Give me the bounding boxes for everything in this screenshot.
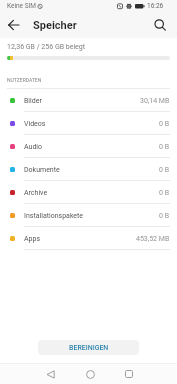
staticText: 0 B — [159, 120, 170, 128]
button[interactable]: BEREINIGEN — [38, 340, 139, 355]
staticText: Installationspakete — [24, 212, 84, 220]
staticText: Audio — [24, 143, 43, 151]
staticText: Keine SIM — [7, 2, 36, 10]
button[interactable]: Bilder — [0, 89, 177, 112]
button[interactable]: Apps — [0, 227, 177, 250]
staticText: Speicher — [33, 19, 77, 32]
staticText: Videos — [24, 120, 46, 128]
button[interactable] — [116, 364, 141, 384]
staticText: BEREINIGEN — [69, 344, 109, 352]
staticText: 0 B — [159, 143, 170, 151]
button[interactable]: Installationspakete — [0, 204, 177, 227]
button[interactable]: Videos — [0, 112, 177, 135]
staticText: Apps — [24, 235, 41, 243]
staticText: Dokumente — [24, 166, 60, 174]
staticText: 453,52 MB — [136, 235, 170, 243]
button[interactable]: Archive — [0, 181, 177, 204]
staticText: NUTZERDATEN — [7, 77, 42, 83]
button[interactable]: Audio — [0, 135, 177, 158]
staticText: 0 B — [159, 189, 170, 197]
staticText: 16:26 — [147, 2, 164, 10]
button[interactable] — [38, 364, 63, 384]
staticText: 12,36 GB / 256 GB belegt — [7, 43, 86, 51]
staticText: Archive — [24, 189, 48, 197]
staticText: 30,14 MB — [140, 97, 170, 105]
button[interactable] — [143, 12, 177, 38]
staticText: Bilder — [24, 97, 42, 105]
button[interactable] — [78, 364, 103, 384]
button[interactable]: Dokumente — [0, 158, 177, 181]
button[interactable] — [0, 12, 28, 38]
staticText: 0 B — [159, 166, 170, 174]
staticText: 0 B — [159, 212, 170, 220]
